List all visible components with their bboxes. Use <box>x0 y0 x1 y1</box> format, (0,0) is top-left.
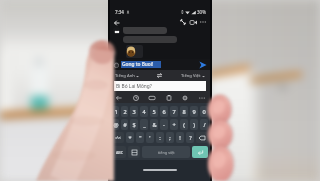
button[interactable]: 9 <box>190 106 198 117</box>
button[interactable]: Send <box>198 60 207 69</box>
staticText: : <box>159 134 161 142</box>
button[interactable]: # <box>121 119 128 130</box>
button[interactable]: 8 <box>180 106 188 117</box>
button[interactable]: @ <box>112 119 119 130</box>
button[interactable]: Back <box>112 18 121 27</box>
staticText: 7:34 <box>115 9 124 15</box>
button[interactable]: More options <box>198 17 208 27</box>
button[interactable]: Tiếng Việt <box>181 73 205 79</box>
button[interactable]: _ <box>140 119 148 130</box>
staticText: 3 <box>132 108 136 116</box>
staticText: ) <box>193 121 195 129</box>
staticText: 7 <box>172 108 176 116</box>
button[interactable]: Bi Bó Lai Mông? <box>114 81 206 91</box>
staticText: " <box>139 134 142 142</box>
staticText: ABC <box>116 150 123 155</box>
button[interactable]: ) <box>190 119 198 130</box>
staticText: ; <box>169 134 171 142</box>
button[interactable]: Swap languages <box>156 72 163 79</box>
button[interactable]: ! <box>176 132 184 143</box>
staticText: 0 <box>202 108 206 116</box>
button[interactable]: 0 <box>200 106 208 117</box>
staticText: 2 <box>123 108 127 116</box>
staticText: / <box>203 121 206 129</box>
button[interactable]: Video call <box>188 17 198 27</box>
button[interactable]: ' <box>146 132 154 143</box>
button[interactable]: ABC <box>112 146 126 158</box>
staticText: Tiếng Việt <box>181 73 201 79</box>
button[interactable]: : <box>156 132 164 143</box>
button[interactable]: tiếng việt <box>142 146 190 158</box>
staticText: ( <box>183 121 185 129</box>
staticText: 8 <box>182 108 186 116</box>
button[interactable]: 6 <box>160 106 168 117</box>
staticText: Gong to Buoi! <box>122 61 154 68</box>
button[interactable]: Back <box>114 93 123 102</box>
staticText: _ <box>143 121 146 129</box>
button[interactable]: ; <box>166 132 174 143</box>
button[interactable]: ? <box>186 132 194 143</box>
button[interactable]: / <box>200 119 208 130</box>
button[interactable]: Recent <box>131 93 140 102</box>
button[interactable]: Enter <box>192 146 208 158</box>
button[interactable]: & <box>150 119 158 130</box>
button[interactable]: - <box>160 119 168 130</box>
staticText: tiếng việt <box>158 150 175 155</box>
button[interactable]: 7 <box>170 106 178 117</box>
staticText: ! <box>179 134 181 142</box>
button[interactable]: 3 <box>130 106 138 117</box>
button[interactable]: Backspace <box>196 132 208 143</box>
staticText: * <box>128 134 132 142</box>
button[interactable]: Emoji keyboard <box>128 146 140 158</box>
staticText: - <box>163 121 165 129</box>
button[interactable]: Call <box>178 17 188 27</box>
staticText: Tiếng Anh <box>115 73 135 79</box>
staticText: =\< <box>115 135 121 140</box>
staticText: & <box>152 121 157 129</box>
staticText: 9 <box>192 108 196 116</box>
button[interactable]: 4 <box>140 106 148 117</box>
button[interactable]: 5 <box>150 106 158 117</box>
button[interactable]: =\< <box>112 132 124 143</box>
button[interactable]: Settings <box>180 93 189 102</box>
staticText: @ <box>113 121 119 129</box>
button[interactable]: Emoji <box>113 62 119 68</box>
button[interactable]: ( <box>180 119 188 130</box>
button[interactable]: Clipboard <box>164 93 173 102</box>
button[interactable]: GIF <box>147 93 156 102</box>
staticText: 1 <box>114 108 118 116</box>
staticText: Bi Bó Lai Mông? <box>116 83 152 90</box>
staticText: 5 <box>152 108 156 116</box>
button[interactable]: * <box>126 132 134 143</box>
button[interactable]: 1 <box>112 106 119 117</box>
button[interactable]: 2 <box>121 106 128 117</box>
staticText: 4 <box>142 108 146 116</box>
staticText: 30% <box>197 9 206 15</box>
button[interactable]: Tiếng Anh <box>115 73 139 79</box>
button[interactable]: $ <box>130 119 138 130</box>
staticText: # <box>123 121 127 129</box>
button[interactable]: + <box>170 119 178 130</box>
staticText: 6 <box>162 108 166 116</box>
button[interactable]: More <box>197 93 206 102</box>
button[interactable]: " <box>136 132 144 143</box>
staticText: $ <box>132 121 136 129</box>
staticText: ? <box>189 134 192 142</box>
staticText: ' <box>149 134 151 142</box>
staticText: + <box>172 121 176 129</box>
